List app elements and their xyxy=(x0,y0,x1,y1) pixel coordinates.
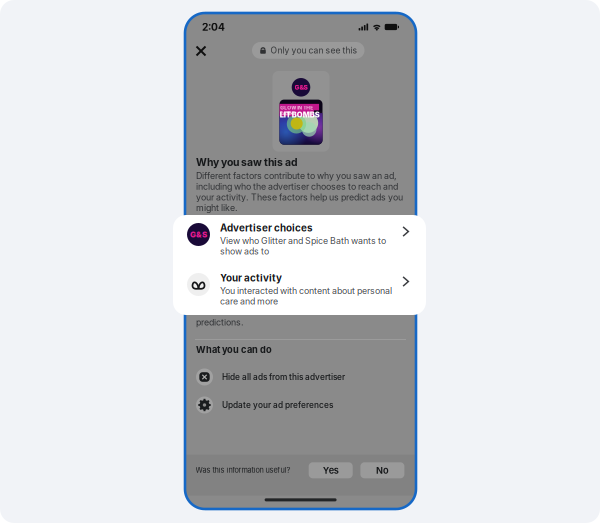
staticText: predictions. xyxy=(196,317,244,328)
staticText: Why you saw this ad xyxy=(196,156,298,169)
button[interactable]: Hide all ads from this advertiser xyxy=(185,365,416,389)
staticText: Was this information useful? xyxy=(196,466,291,474)
staticText: Different factors contribute to why you … xyxy=(196,171,403,213)
staticText: View who Glitter and Spice Bath wants to… xyxy=(220,235,386,257)
button[interactable]: Your activity xyxy=(173,265,426,315)
staticText: LIT BOMBS xyxy=(280,110,320,119)
button[interactable]: Close xyxy=(189,39,213,63)
staticText: Advertiser choices xyxy=(220,222,313,234)
staticText: Hide all ads from this advertiser xyxy=(222,372,345,382)
staticText: No xyxy=(376,465,389,476)
staticText: G&S xyxy=(294,83,307,91)
staticText: Update your ad preferences xyxy=(222,400,333,410)
button[interactable]: No xyxy=(360,462,404,478)
button[interactable]: G&S xyxy=(173,215,426,265)
staticText: G&S xyxy=(190,230,207,239)
staticText: Yes xyxy=(323,465,339,476)
staticText: What you can do xyxy=(196,344,272,355)
staticText: You interacted with content about person… xyxy=(220,285,392,307)
button[interactable]: Update your ad preferences xyxy=(185,393,416,417)
staticText: 2:04 xyxy=(202,21,225,33)
staticText: Your activity xyxy=(220,272,282,284)
staticText: GLOW IN THE DARK xyxy=(280,105,313,117)
staticText: Only you can see this xyxy=(270,45,357,55)
button[interactable]: Yes xyxy=(309,462,353,478)
